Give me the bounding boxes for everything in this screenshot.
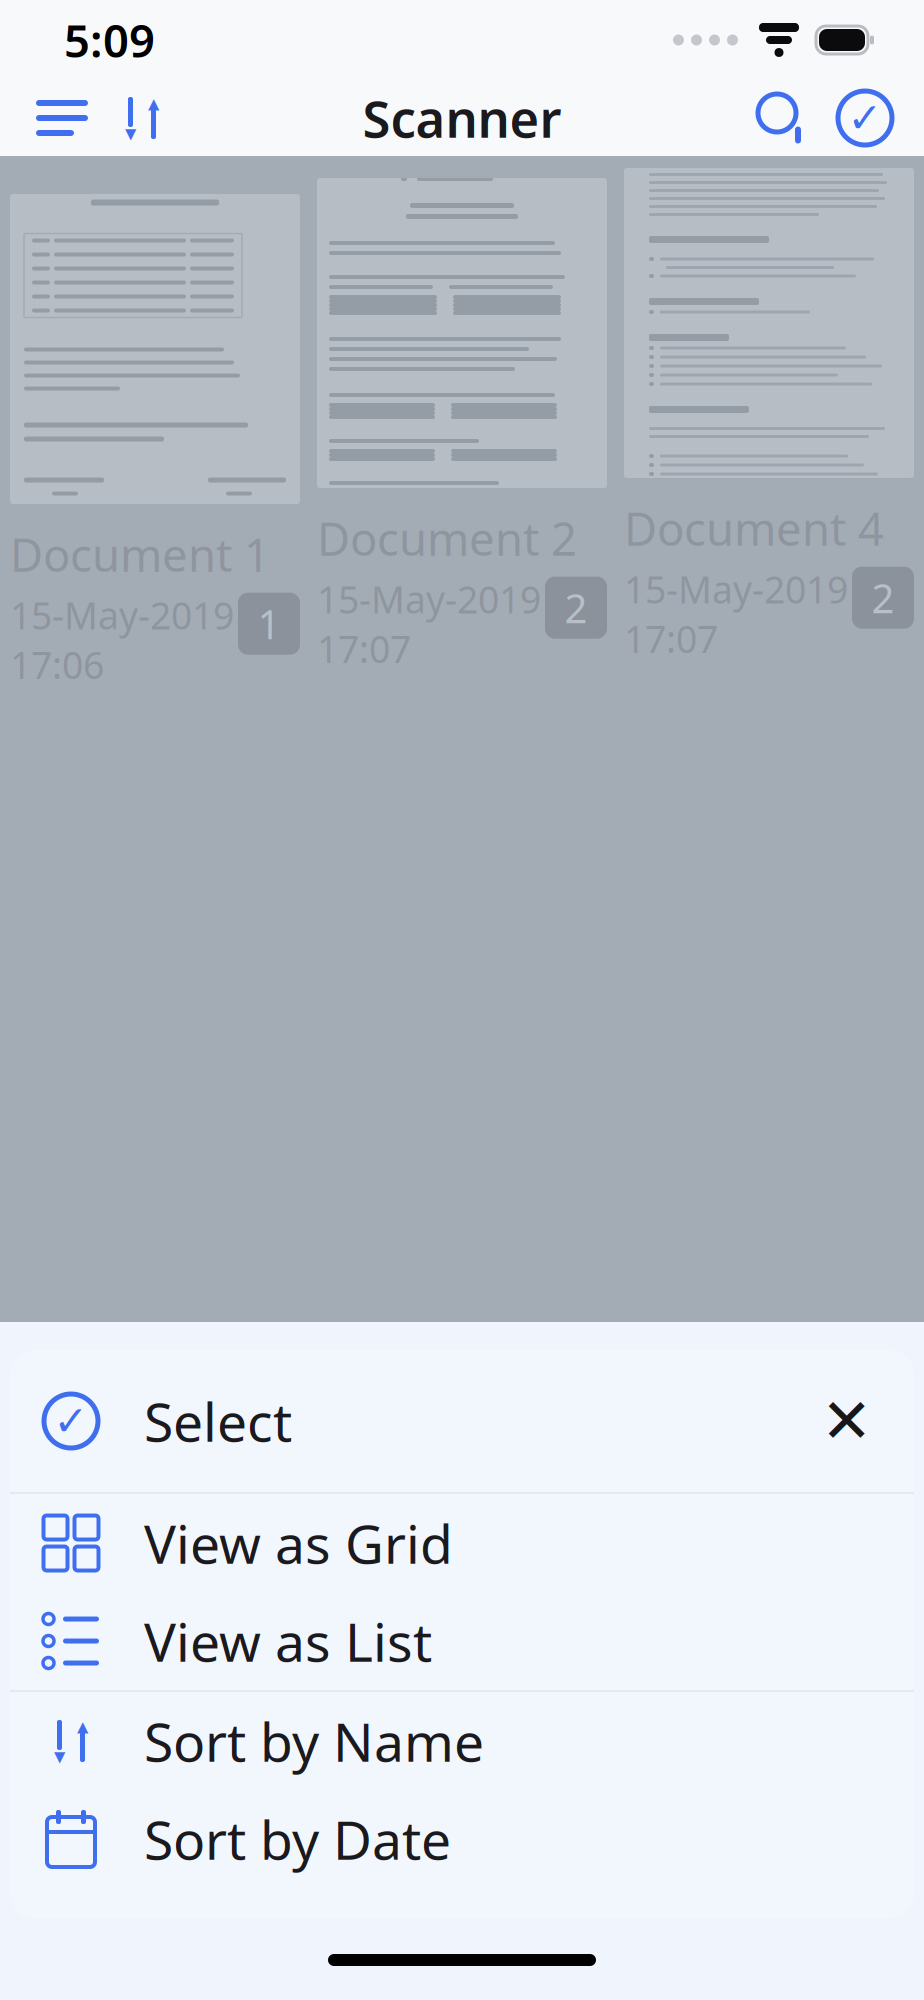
staticText: Document 2 (317, 508, 577, 568)
staticText: ✓ (847, 94, 882, 141)
staticText: 15-May-2019 17:07 (317, 574, 541, 673)
staticText: 1 (257, 597, 280, 650)
button[interactable]: Document 1 (10, 156, 300, 739)
staticText: ▾ (54, 1743, 65, 1769)
staticText: Scanner (362, 84, 561, 152)
staticText: Document 1 (10, 524, 270, 584)
button[interactable]: View as List (10, 1593, 914, 1689)
staticText: Document 4 (624, 498, 884, 558)
staticText: 2 (564, 581, 587, 634)
button[interactable]: Document 2 (317, 156, 607, 739)
staticText: ▴ (148, 90, 159, 116)
button[interactable]: Menu (18, 82, 106, 154)
staticText: ✓ (53, 1397, 88, 1444)
button[interactable]: Select (824, 81, 906, 155)
button[interactable]: Sort by Date (10, 1791, 914, 1887)
staticText: Sort by Name (144, 1706, 484, 1776)
staticText: 2 (871, 571, 894, 624)
staticText: 5:09 (64, 10, 155, 70)
button[interactable]: Sort (106, 81, 178, 155)
button[interactable]: View as Grid (10, 1495, 914, 1591)
staticText: View as List (144, 1606, 432, 1676)
staticText: Sort by Date (144, 1804, 451, 1874)
staticText: ▴ (77, 1713, 88, 1739)
staticText: ✕ (821, 1386, 872, 1456)
staticText: 15-May-2019 17:07 (624, 564, 848, 663)
button[interactable]: Sort by Name (10, 1693, 914, 1789)
button[interactable]: Search (740, 82, 824, 154)
button[interactable]: Select (10, 1373, 914, 1469)
staticText: View as Grid (144, 1508, 453, 1578)
button[interactable]: Document 4 (624, 156, 914, 739)
staticText: ▾ (125, 120, 136, 146)
staticText: Select (144, 1386, 292, 1456)
staticText: 15-May-2019 17:06 (10, 590, 234, 689)
